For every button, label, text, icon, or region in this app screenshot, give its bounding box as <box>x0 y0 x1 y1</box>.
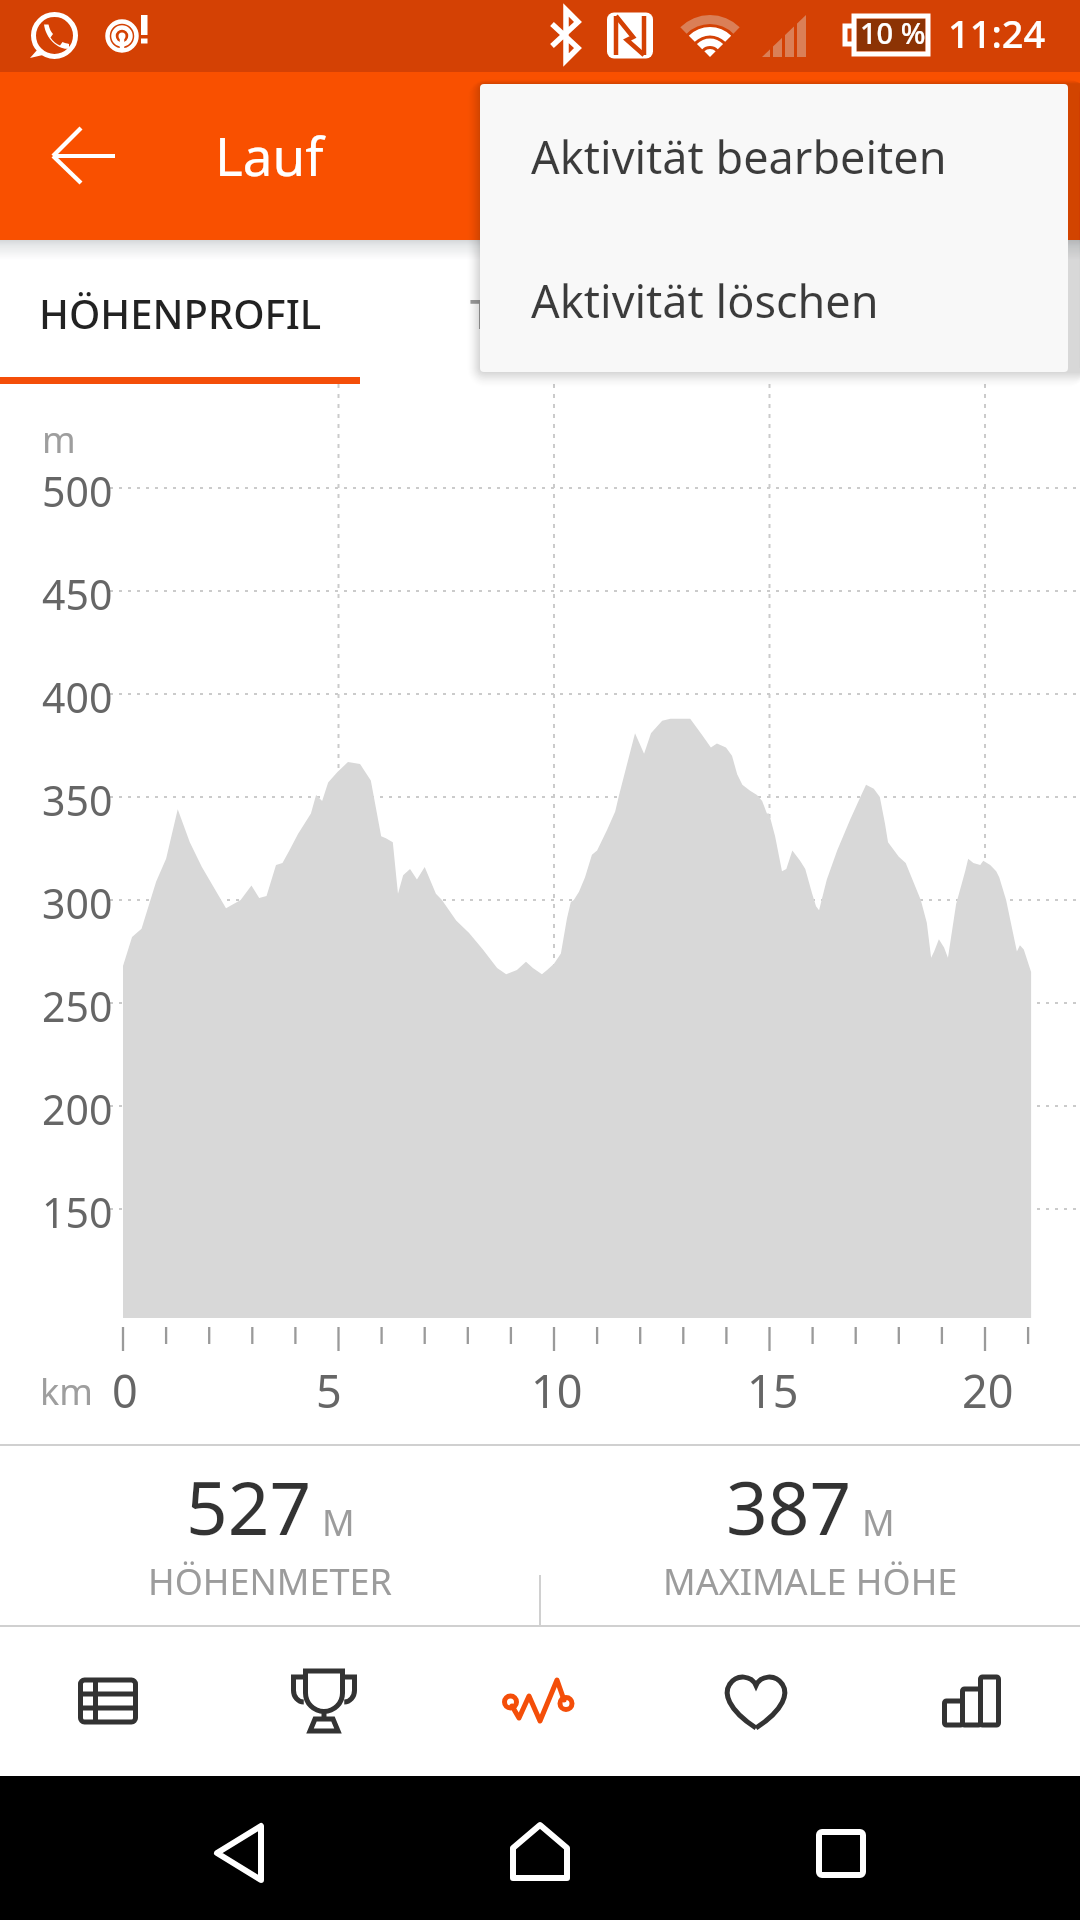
staticText: 200 <box>42 1081 113 1137</box>
staticText: 11:24 <box>948 7 1046 59</box>
staticText: 150 <box>42 1184 113 1240</box>
staticText: MAXIMALE HÖHE <box>663 1557 958 1606</box>
staticText: 15 <box>747 1360 799 1421</box>
staticText: Lauf <box>215 119 324 191</box>
staticText: 350 <box>42 772 113 828</box>
staticText: Aktivität bearbeiten <box>531 126 947 187</box>
button[interactable]: Statistics <box>864 1627 1080 1776</box>
staticText: m <box>42 415 76 464</box>
staticText: 10 <box>531 1360 583 1421</box>
staticText: 10 % <box>860 13 926 52</box>
staticText: M <box>322 1498 355 1547</box>
staticText: 500 <box>42 463 113 519</box>
button[interactable]: Heart rate <box>648 1627 864 1776</box>
staticText: 20 <box>962 1360 1014 1421</box>
button[interactable]: Table <box>0 1627 216 1776</box>
button[interactable]: Trophy <box>216 1627 432 1776</box>
button[interactable]: TEMPO <box>470 286 608 340</box>
button[interactable]: HÖHENPROFIL <box>39 286 322 340</box>
staticText: 387 <box>726 1457 852 1556</box>
staticText: M <box>862 1498 895 1547</box>
staticText: 300 <box>42 875 113 931</box>
staticText: km <box>40 1367 93 1416</box>
staticText: 400 <box>42 669 113 725</box>
button[interactable]: Back <box>25 101 135 211</box>
staticText: 5 <box>316 1360 342 1421</box>
staticText: Aktivität löschen <box>531 270 879 331</box>
button[interactable]: Aktivität löschen <box>480 228 1068 372</box>
button[interactable]: Aktivität bearbeiten <box>480 84 1068 228</box>
staticText: 0 <box>112 1360 138 1421</box>
staticText: 450 <box>42 566 113 622</box>
staticText: 527 <box>186 1457 312 1556</box>
staticText: HÖHENMETER <box>148 1557 392 1606</box>
button[interactable]: Elevation <box>432 1627 648 1776</box>
staticText: 250 <box>42 978 113 1034</box>
